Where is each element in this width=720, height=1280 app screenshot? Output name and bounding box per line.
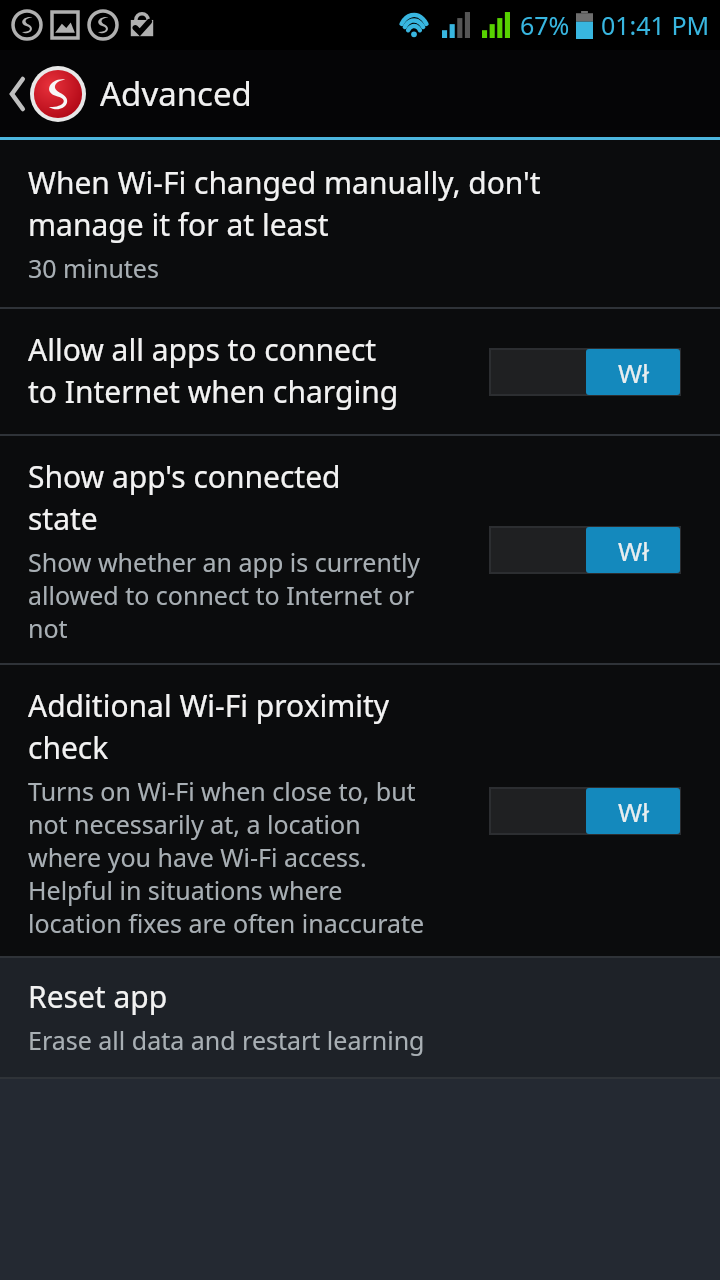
button[interactable]: Allow all apps to connect to Internet wh… [0,309,720,434]
staticText: Wł [618,533,649,568]
staticText: When Wi-Fi changed manually, don't manag… [28,162,541,245]
button[interactable]: Reset app [0,958,720,1077]
staticText: Advanced [100,71,252,116]
staticText: Allow all apps to connect to Internet wh… [28,329,399,412]
staticText: Wł [618,355,649,390]
button[interactable]: Additional Wi-Fi proximity check [0,665,720,956]
button[interactable]: Navigate up, Advanced [0,50,720,137]
staticText: Turns on Wi-Fi when close to, but not ne… [28,774,425,940]
staticText: Wł [618,794,649,829]
staticText: Erase all data and restart learning [28,1023,425,1057]
staticText: Reset app [28,976,168,1017]
staticText: Show app's connected state [28,456,341,539]
button[interactable]: Toggle, on [490,349,680,395]
button[interactable]: When Wi-Fi changed manually, don't manag… [0,140,720,307]
button[interactable]: Show app's connected state [0,436,720,663]
staticText: Additional Wi-Fi proximity check [28,685,390,768]
staticText: 01:41 PM [601,8,710,42]
button[interactable]: Toggle, on [490,788,680,834]
staticText: 67% [520,8,570,42]
staticText: 30 minutes [28,251,159,285]
staticText: Show whether an app is currently allowed… [28,545,421,645]
button[interactable]: Toggle, on [490,527,680,573]
